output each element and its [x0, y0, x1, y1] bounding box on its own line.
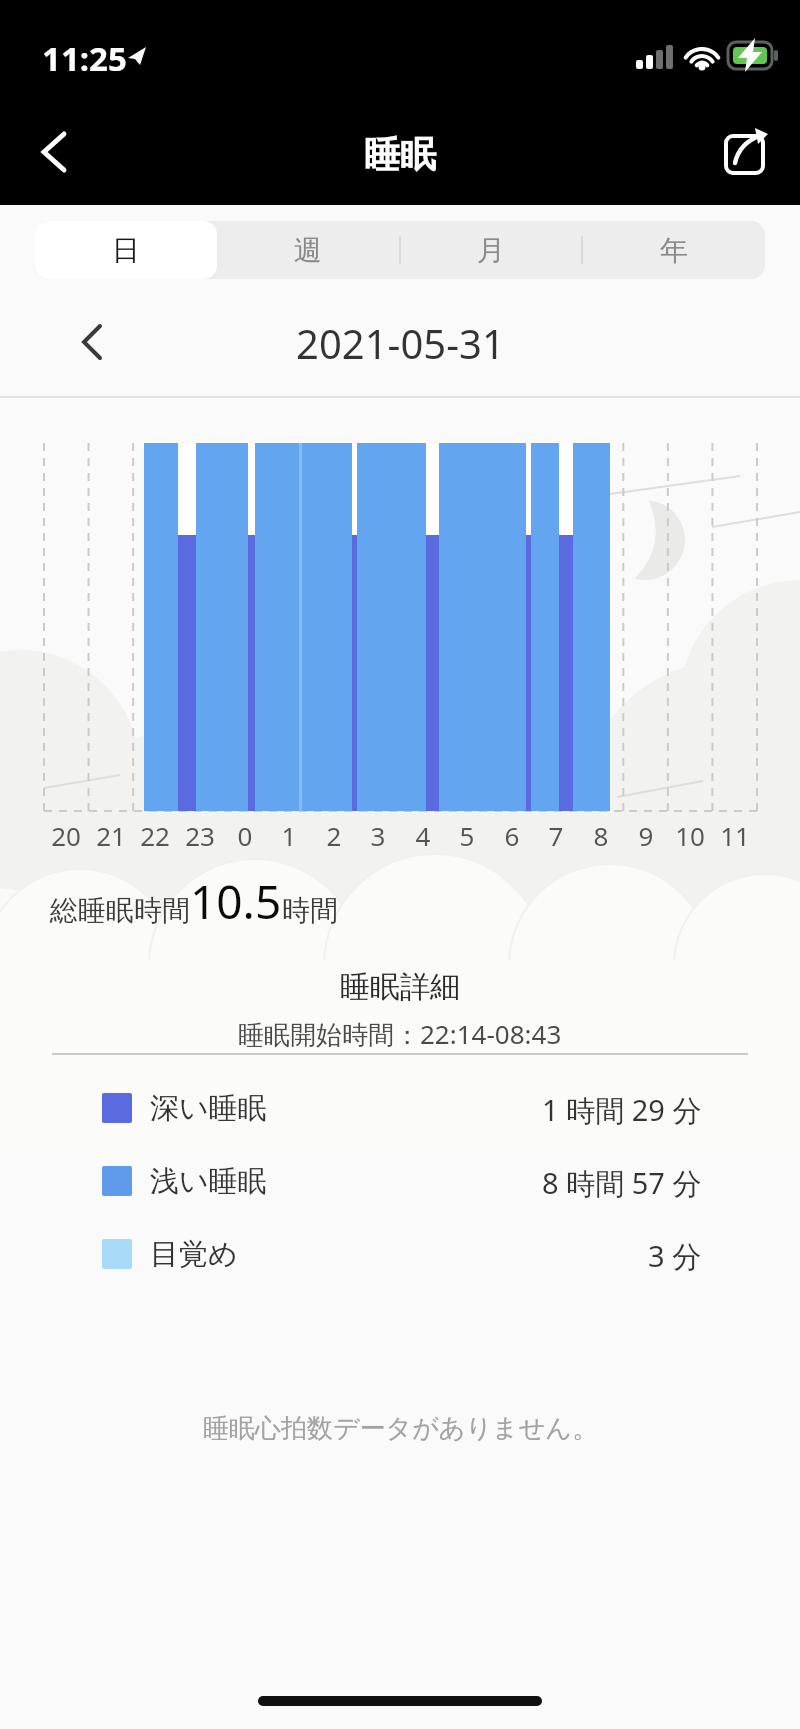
staticText: 睡眠開始時間：22:14-08:43	[238, 1016, 562, 1052]
staticText: 21	[87, 818, 135, 853]
staticText: 週	[294, 233, 322, 268]
staticText: 5	[443, 818, 491, 853]
staticText: 0	[221, 818, 269, 853]
staticText: 3	[354, 818, 402, 853]
staticText: 4	[399, 818, 447, 853]
staticText: 3 分	[648, 1236, 702, 1272]
staticText: 8	[577, 818, 625, 853]
staticText: 9	[622, 818, 670, 853]
staticText: 睡眠心拍数データがありません。	[203, 1412, 598, 1445]
staticText: 日	[112, 233, 140, 268]
button[interactable]: 週	[217, 221, 399, 279]
staticText: 22	[131, 818, 179, 853]
staticText: 1 時間 29 分	[542, 1090, 702, 1126]
staticText: 11:25	[42, 36, 127, 81]
staticText: 年	[660, 233, 688, 268]
button[interactable]: 浅い睡眠	[102, 1163, 702, 1199]
button[interactable]: 目覚め	[102, 1236, 702, 1272]
staticText: 6	[488, 818, 536, 853]
staticText: 浅い睡眠	[150, 1163, 267, 1199]
staticText: 10	[666, 818, 714, 853]
staticText: 20	[42, 818, 90, 853]
staticText: 23	[176, 818, 224, 853]
button[interactable]: 月	[399, 221, 582, 279]
staticText: 2021-05-31	[296, 316, 505, 370]
staticText: 1	[265, 818, 313, 853]
staticText: 総睡眠時間	[50, 893, 190, 928]
staticText: 7	[532, 818, 580, 853]
button[interactable]: 日	[35, 221, 217, 279]
staticText: 月	[477, 233, 505, 268]
button[interactable]	[714, 116, 780, 182]
button[interactable]: 年	[582, 221, 765, 279]
staticText: 睡眠詳細	[340, 968, 460, 1006]
staticText: 10.5	[190, 870, 282, 933]
staticText: 睡眠	[364, 132, 436, 177]
staticText: 8 時間 57 分	[542, 1163, 702, 1199]
staticText: 目覚め	[150, 1236, 238, 1272]
button[interactable]: 深い睡眠	[102, 1090, 702, 1126]
staticText: 2	[310, 818, 358, 853]
staticText: 時間	[282, 893, 338, 928]
staticText: 深い睡眠	[150, 1090, 267, 1126]
button[interactable]	[66, 316, 118, 368]
staticText: 11	[711, 818, 759, 853]
button[interactable]	[26, 124, 82, 180]
